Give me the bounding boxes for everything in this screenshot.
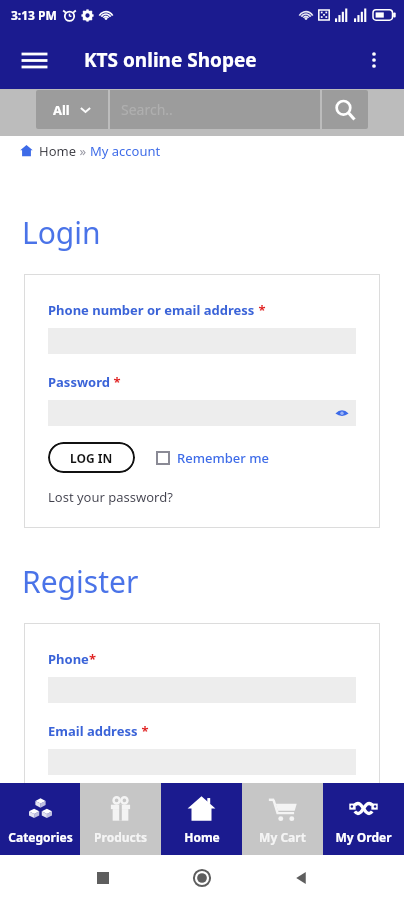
- button[interactable]: My Cart: [242, 783, 323, 855]
- button[interactable]: LOG IN: [48, 442, 135, 473]
- staticText: My Cart: [259, 829, 306, 845]
- staticText: Email address: [48, 722, 138, 740]
- staticText: Search..: [121, 100, 173, 119]
- staticText: Lost your password?: [48, 488, 173, 506]
- staticText: Home: [184, 829, 220, 845]
- button[interactable]: Back: [284, 861, 318, 895]
- button[interactable]: More options: [353, 39, 395, 81]
- staticText: All: [53, 101, 70, 119]
- button[interactable]: Home: [39, 142, 76, 160]
- button[interactable]: Remember me: [156, 449, 269, 467]
- button[interactable]: Products: [80, 783, 161, 855]
- staticText: »: [76, 142, 90, 160]
- staticText: *: [89, 650, 97, 668]
- button[interactable]: Recent apps: [86, 861, 120, 895]
- button[interactable]: Show password: [48, 400, 356, 426]
- staticText: KTS online Shopee: [84, 47, 257, 73]
- button[interactable]: My Order: [323, 783, 404, 855]
- button[interactable]: Home: [161, 783, 242, 855]
- staticText: Products: [94, 829, 147, 845]
- staticText: 3:13 PM: [11, 7, 57, 23]
- staticText: Password: [48, 373, 110, 391]
- staticText: Register: [22, 561, 139, 602]
- staticText: Categories: [8, 829, 73, 845]
- staticText: *: [138, 722, 149, 740]
- staticText: *: [110, 373, 121, 391]
- button[interactable]: Open navigation menu: [13, 39, 55, 81]
- staticText: Phone: [48, 650, 89, 668]
- staticText: Login: [22, 212, 101, 253]
- button[interactable]: All: [36, 90, 108, 129]
- button[interactable]: Categories: [0, 783, 80, 855]
- button[interactable]: Lost your password?: [48, 488, 173, 506]
- staticText: *: [255, 301, 266, 319]
- staticText: Remember me: [177, 449, 269, 467]
- staticText: My Order: [335, 829, 392, 845]
- button[interactable]: Show password: [334, 405, 350, 421]
- staticText: Phone number or email address: [48, 301, 255, 319]
- button[interactable]: Search: [322, 90, 368, 129]
- button[interactable]: My account: [90, 142, 161, 160]
- staticText: My account: [90, 142, 161, 160]
- staticText: Home: [39, 142, 76, 160]
- button[interactable]: Home: [185, 861, 219, 895]
- staticText: LOG IN: [70, 450, 113, 466]
